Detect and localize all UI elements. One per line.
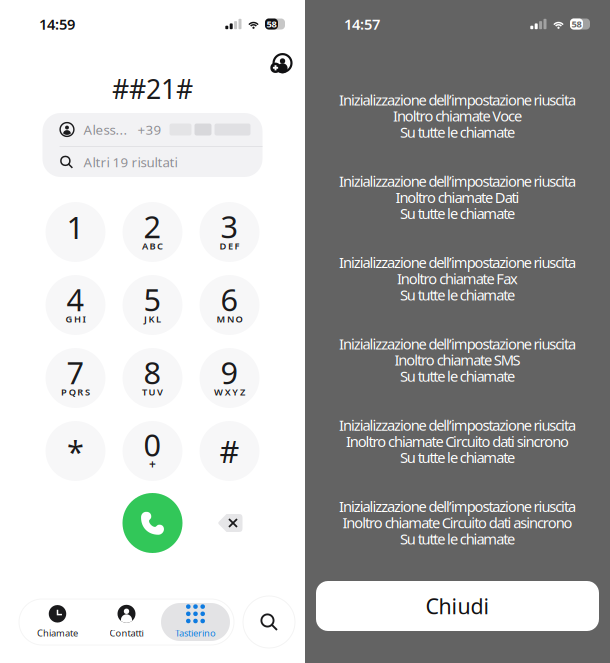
staticText: MNO [216,313,243,325]
staticText: 5 [143,279,161,320]
button[interactable]: 1 [45,202,105,262]
staticText: 1 [66,207,84,247]
button[interactable]: 5 [122,275,182,335]
staticText: Inoltro chiamate Fax [397,269,518,288]
button[interactable]: 2 [122,202,182,262]
button[interactable]: Tastierino [161,603,230,641]
button[interactable]: 3 [199,202,259,262]
button[interactable]: # [199,421,259,481]
staticText: 3 [220,206,238,247]
staticText: Inizializzazione dell’impostazione riusc… [339,497,576,516]
staticText: 0 [143,424,161,465]
staticText: 58 [266,18,276,30]
button[interactable]: Aggiungi contatto [263,49,297,79]
staticText: Inoltro chiamate Circuito dati asincrono [342,513,572,532]
staticText: Su tutte le chiamate [400,529,515,548]
staticText: Inoltro chiamate Circuito dati sincrono [346,431,569,451]
staticText: 58 [571,18,581,30]
button[interactable]: 8 [122,348,182,408]
staticText: Aless... [83,121,127,138]
staticText: 4 [66,279,84,320]
button[interactable]: Contatti [92,603,161,641]
staticText: # [219,431,239,471]
staticText: Inizializzazione dell’impostazione riusc… [339,415,576,435]
staticText: JKL [144,313,161,325]
staticText: 6 [220,279,238,320]
button[interactable]: Altri 19 risultati [42,147,262,177]
button[interactable]: 9 [199,348,259,408]
button[interactable]: Aless... [42,113,262,146]
staticText: Altri 19 risultati [83,153,177,171]
button[interactable]: Cerca [243,596,295,648]
button[interactable]: Chiudi [316,581,599,631]
button[interactable]: 4 [45,275,105,335]
staticText: Su tutte le chiamate [400,366,515,386]
staticText: ##21# [112,71,193,106]
staticText: ABC [142,240,163,252]
staticText: 14:57 [344,14,380,34]
staticText: Chiudi [425,592,489,620]
staticText: Contatti [109,627,143,639]
staticText: Chiamate [37,627,78,639]
staticText: Su tutte le chiamate [400,285,515,304]
staticText: WXYZ [214,386,245,398]
staticText: TUV [142,386,163,398]
button[interactable]: 6 [199,275,259,335]
staticText: * [67,431,84,471]
staticText: Tastierino [175,627,216,639]
staticText: +39 [137,121,161,138]
button[interactable]: 7 [45,348,105,408]
staticText: Inoltro chiamate Voce [393,106,522,126]
staticText: 14:59 [39,14,75,34]
staticText: Su tutte le chiamate [400,204,515,223]
staticText: 8 [143,352,161,393]
staticText: Inizializzazione dell’impostazione riusc… [339,90,576,109]
button[interactable]: Chiama [122,493,182,553]
button[interactable]: * [45,421,105,481]
staticText: Inoltro chiamate SMS [394,350,520,370]
staticText: Su tutte le chiamate [400,122,515,142]
button[interactable]: 0 [122,421,182,481]
staticText: Inizializzazione dell’impostazione riusc… [339,334,576,353]
staticText: Inizializzazione dell’impostazione riusc… [339,253,576,272]
staticText: 9 [220,352,238,393]
staticText: + [149,456,156,472]
staticText: Inoltro chiamate Dati [395,187,519,207]
staticText: PQRS [61,386,90,398]
staticText: DEF [219,240,240,252]
staticText: 2 [143,206,161,247]
staticText: GHI [65,313,86,325]
button[interactable]: Chiamate [23,603,92,641]
button[interactable]: Cancella [207,501,253,545]
staticText: Inizializzazione dell’impostazione riusc… [339,171,576,191]
staticText: 7 [66,352,84,393]
staticText: Su tutte le chiamate [400,448,515,467]
